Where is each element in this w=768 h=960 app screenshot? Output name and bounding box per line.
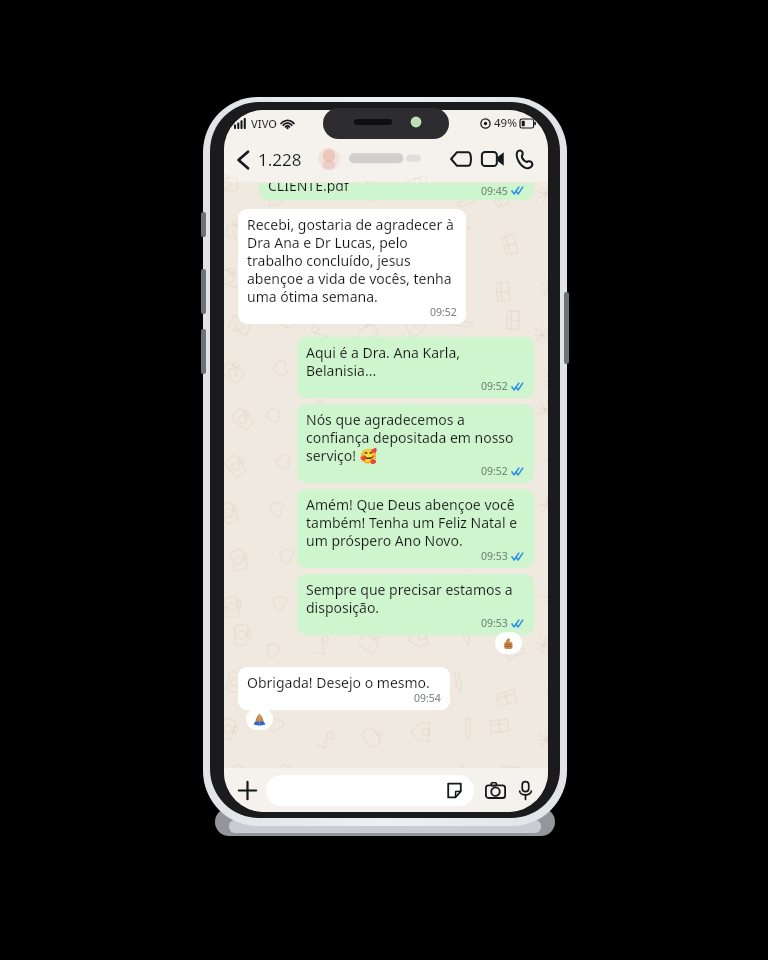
staticText: 49% xyxy=(494,115,517,131)
staticText: 1.228 xyxy=(258,148,302,171)
staticText: Sempre que precisar estamos a disposição… xyxy=(306,580,525,617)
button[interactable]: Nós que agradecemos a confiança deposita… xyxy=(297,404,534,483)
staticText: 09:53 xyxy=(481,616,508,630)
staticText: Recebi, gostaria de agradecer à Dra Ana … xyxy=(247,215,457,306)
button[interactable]: Contact profile photo xyxy=(318,148,340,170)
button[interactable]: Aqui é a Dra. Ana Karla, Belanisia... xyxy=(297,337,534,398)
button[interactable]: Camera xyxy=(480,775,510,805)
button[interactable]: Praying hands reaction xyxy=(246,708,273,730)
staticText: Nós que agradecemos a confiança deposita… xyxy=(306,410,525,465)
staticText: Obrigada! Desejo o mesmo. xyxy=(247,673,430,692)
staticText: 09:52 xyxy=(430,305,457,319)
button[interactable]: Sempre que precisar estamos a disposição… xyxy=(297,574,534,635)
button[interactable]: Obrigada! Desejo o mesmo. xyxy=(238,667,450,710)
button[interactable]: Video call xyxy=(476,143,508,175)
staticText: Aqui é a Dra. Ana Karla, Belanisia... xyxy=(306,343,525,380)
button[interactable]: Message input field xyxy=(266,775,474,806)
button[interactable]: Voice call xyxy=(508,143,540,175)
button[interactable]: Contact name xyxy=(349,151,446,167)
button[interactable]: Label xyxy=(446,144,476,174)
button[interactable]: Amém! Que Deus abençoe você também! Tenh… xyxy=(297,489,534,568)
button[interactable]: Thumbs up reaction xyxy=(495,632,522,654)
button[interactable]: Attach xyxy=(232,775,262,805)
staticText: CLIENTE.pdf xyxy=(268,183,349,193)
button[interactable]: Back xyxy=(232,143,306,176)
staticText: Amém! Que Deus abençoe você também! Tenh… xyxy=(306,495,525,550)
button[interactable]: Voice message xyxy=(510,775,540,805)
staticText: 09:52 xyxy=(481,379,508,393)
staticText: 09:52 xyxy=(481,464,508,478)
button[interactable]: Recebi, gostaria de agradecer à Dra Ana … xyxy=(238,209,466,324)
staticText: VIVO xyxy=(251,116,277,131)
button[interactable]: CLIENTE.pdf xyxy=(259,183,534,200)
staticText: 09:54 xyxy=(414,691,441,705)
staticText: 09:53 xyxy=(481,549,508,563)
staticText: 09:45 xyxy=(481,184,508,198)
